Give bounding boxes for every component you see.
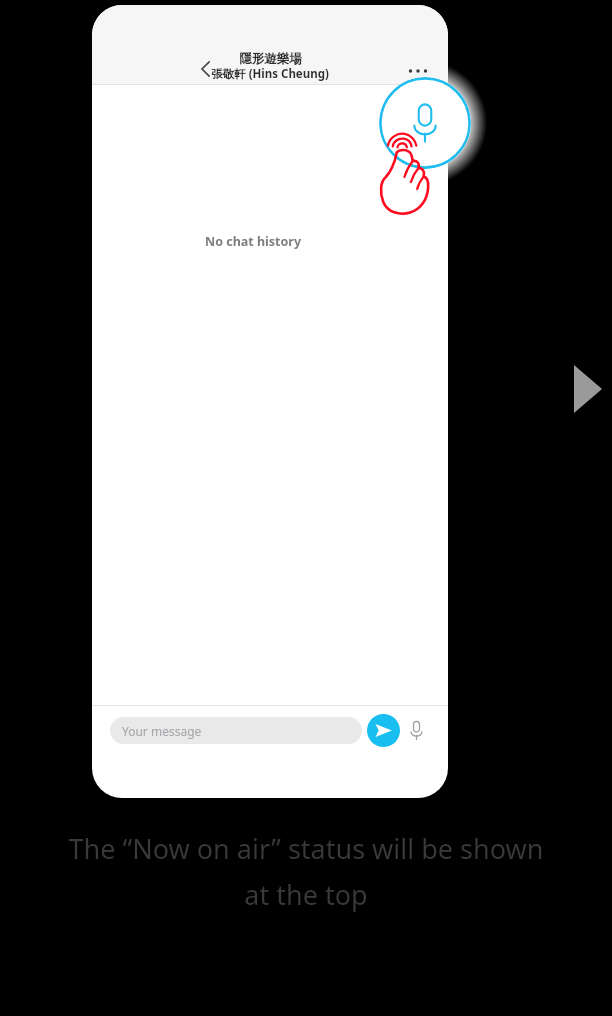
- staticText: 隱形遊樂場: [239, 51, 302, 67]
- button[interactable]: Start voice broadcast: [379, 77, 471, 169]
- button[interactable]: Voice message: [400, 714, 433, 747]
- staticText: 張敬軒 (Hins Cheung): [211, 66, 329, 82]
- button[interactable]: Send: [367, 714, 400, 747]
- staticText: No chat history: [92, 233, 414, 255]
- button[interactable]: More options: [400, 53, 436, 89]
- button[interactable]: Your message: [110, 717, 362, 744]
- button[interactable]: Next: [564, 365, 612, 413]
- staticText: Your message: [122, 723, 202, 739]
- button[interactable]: Back: [188, 51, 224, 87]
- button[interactable]: 隱形遊樂場: [170, 51, 370, 85]
- staticText: The “Now on air” status will be shown at…: [6, 830, 606, 930]
